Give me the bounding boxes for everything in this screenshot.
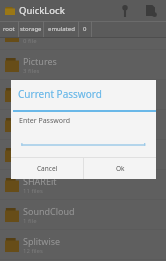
- staticText: root: [3, 25, 15, 33]
- staticText: 0 file: [23, 37, 37, 45]
- staticText: 3 files: [23, 67, 40, 75]
- button[interactable]: Pictures: [0, 50, 166, 80]
- staticText: 11 files: [23, 187, 43, 195]
- button[interactable]: Set password: [115, 0, 135, 21]
- button[interactable]: emulated: [44, 21, 78, 37]
- staticText: 1 file: [23, 157, 37, 165]
- button[interactable]: Music: [0, 20, 166, 50]
- staticText: Recordings: [23, 115, 71, 127]
- staticText: QuickLock: [19, 4, 65, 17]
- button[interactable]: Ringtones: [0, 140, 166, 170]
- staticText: SHAREit: [23, 175, 57, 187]
- staticText: Music: [23, 25, 48, 37]
- staticText: storage: [20, 25, 42, 33]
- staticText: Ringtones: [23, 145, 66, 157]
- button[interactable]: New encrypted file: [139, 0, 161, 21]
- button[interactable]: Cancel: [11, 158, 83, 179]
- button[interactable]: Splitwise: [0, 230, 166, 260]
- button[interactable]: 0: [79, 21, 91, 37]
- button[interactable]: Recordings: [0, 110, 166, 140]
- button[interactable]: Ok: [84, 158, 156, 179]
- staticText: 0: [83, 25, 87, 33]
- staticText: SoundCloud: [23, 205, 75, 217]
- button[interactable]: storage: [19, 21, 43, 37]
- button[interactable]: SHAREit: [0, 170, 166, 200]
- staticText: Current Password: [18, 87, 102, 101]
- button[interactable]: SoundCloud: [0, 200, 166, 230]
- staticText: 0 file: [23, 97, 37, 105]
- staticText: Podcasts: [23, 85, 61, 97]
- staticText: Cancel: [37, 164, 58, 173]
- staticText: 12 files: [23, 247, 43, 255]
- staticText: Pictures: [23, 55, 57, 67]
- button[interactable]: root: [0, 21, 18, 37]
- staticText: 1 file: [23, 217, 37, 225]
- staticText: Enter Password: [19, 116, 71, 126]
- staticText: Ok: [116, 164, 125, 173]
- staticText: emulated: [48, 25, 75, 33]
- staticText: Splitwise: [23, 235, 61, 247]
- button[interactable]: Podcasts: [0, 80, 166, 110]
